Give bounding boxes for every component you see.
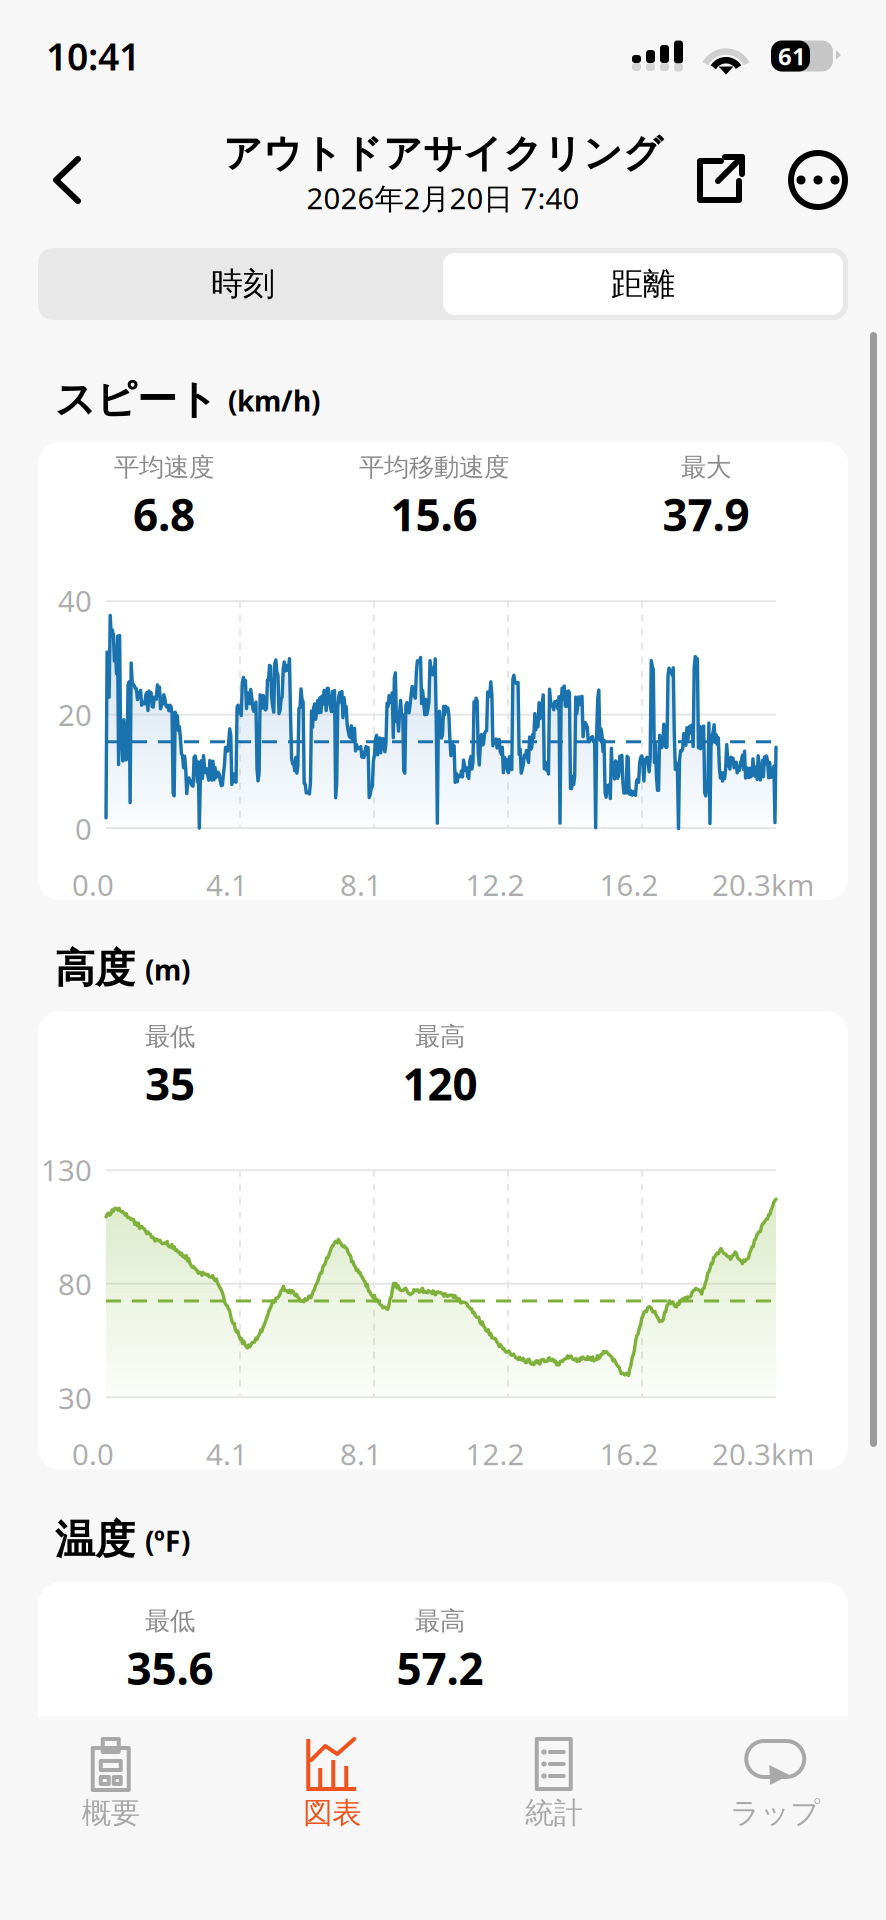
button[interactable]: 共有 — [688, 148, 752, 212]
staticText: 温度 — [55, 1515, 135, 1564]
staticText: 40 — [58, 581, 92, 620]
staticText: 12.2 — [465, 865, 524, 904]
staticText: 80 — [58, 1264, 92, 1303]
staticText: 0 — [75, 809, 92, 848]
staticText: 4.1 — [206, 865, 248, 904]
staticText: 15.6 — [390, 485, 477, 543]
staticText: 0.0 — [72, 865, 114, 904]
button[interactable]: 距離 — [443, 253, 843, 315]
staticText: 20.3km — [712, 865, 814, 904]
staticText: 16.2 — [599, 1434, 658, 1473]
staticText: 最低 — [145, 1021, 195, 1052]
staticText: 130 — [41, 1150, 92, 1189]
staticText: スピート — [55, 375, 218, 424]
staticText: 6.8 — [133, 485, 195, 543]
staticText: 最高 — [415, 1021, 465, 1052]
staticText: 10:41 — [46, 31, 140, 81]
staticText: 57.2 — [396, 1639, 483, 1697]
staticText: 4.1 — [206, 1434, 248, 1473]
staticText: 61 — [778, 40, 806, 72]
button[interactable]: 戻る — [34, 146, 100, 214]
staticText: 8.1 — [340, 1434, 382, 1473]
staticText: 35.6 — [126, 1639, 213, 1697]
staticText: 統計 — [525, 1795, 583, 1831]
staticText: 時刻 — [211, 264, 275, 304]
staticText: 8.1 — [340, 865, 382, 904]
staticText: 最低 — [145, 1606, 195, 1637]
staticText: 20 — [58, 695, 92, 734]
button[interactable]: 図表 — [221, 1699, 443, 1920]
staticText: 12.2 — [465, 1434, 524, 1473]
staticText: 2026年2月20日 7:40 — [306, 178, 579, 217]
staticText: 37.9 — [662, 485, 749, 543]
staticText: 平均速度 — [114, 452, 214, 483]
staticText: 平均移動速度 — [359, 452, 509, 483]
staticText: 16.2 — [599, 865, 658, 904]
staticText: 0.0 — [72, 1434, 114, 1473]
button[interactable]: 時刻 — [43, 253, 443, 315]
staticText: アウトドアサイクリング — [223, 130, 663, 177]
staticText: 35 — [145, 1054, 195, 1112]
staticText: 最高 — [415, 1606, 465, 1637]
staticText: 距離 — [611, 264, 675, 304]
staticText: (ºF) — [145, 1522, 190, 1559]
staticText: 最大 — [681, 452, 731, 483]
button[interactable]: ラップ — [664, 1699, 886, 1920]
button[interactable]: その他 — [786, 148, 850, 212]
staticText: 図表 — [303, 1795, 361, 1831]
staticText: 20.3km — [712, 1434, 814, 1473]
staticText: 30 — [58, 1378, 92, 1417]
staticText: 概要 — [82, 1795, 140, 1831]
staticText: 120 — [402, 1054, 477, 1112]
staticText: (km/h) — [228, 382, 320, 419]
staticText: ラップ — [730, 1795, 820, 1831]
button[interactable]: 統計 — [443, 1699, 664, 1920]
button[interactable]: 概要 — [0, 1699, 221, 1920]
staticText: 高度 — [55, 944, 135, 993]
staticText: (m) — [145, 951, 190, 988]
